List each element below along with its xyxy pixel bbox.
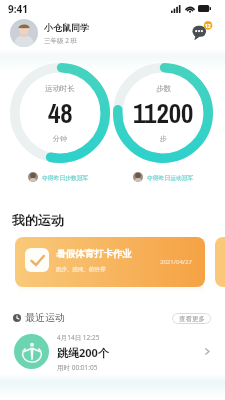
button[interactable]: 夺得昨日步数冠军 bbox=[28, 172, 89, 182]
button[interactable]: 最近运动 bbox=[13, 311, 65, 324]
staticText: 跳绳200个 bbox=[57, 345, 109, 360]
button[interactable]: Profile bbox=[10, 19, 38, 47]
staticText: 运动时长 bbox=[45, 84, 75, 93]
staticText: 11200 bbox=[133, 95, 194, 131]
staticText: 跑步、跳绳、俯卧撑 bbox=[56, 266, 106, 273]
staticText: 夺得昨日运动冠军 bbox=[147, 174, 194, 181]
staticText: 三年级 2 班 bbox=[44, 36, 78, 45]
button[interactable]: 夺得昨日运动冠军 bbox=[133, 172, 194, 182]
staticText: 我的运动 bbox=[12, 212, 64, 228]
staticText: 查看更多 bbox=[179, 315, 205, 323]
staticText: 暑假体育打卡作业 bbox=[56, 248, 132, 260]
staticText: 夺得昨日步数冠军 bbox=[42, 174, 89, 181]
staticText: 2021/04/27 bbox=[160, 258, 192, 266]
staticText: 步 bbox=[160, 134, 167, 143]
staticText: 小仓鼠同学 bbox=[44, 22, 89, 33]
staticText: 9:41 bbox=[8, 2, 28, 16]
staticText: 48 bbox=[48, 95, 73, 131]
staticText: 用时 00:01:05 bbox=[57, 363, 98, 372]
button[interactable]: 暑假体育打卡作业 bbox=[15, 237, 205, 287]
staticText: 4月14日 12:25 bbox=[57, 333, 100, 342]
staticText: 最近运动 bbox=[25, 311, 65, 324]
staticText: 分钟 bbox=[53, 134, 67, 143]
staticText: 12 bbox=[205, 23, 211, 30]
button[interactable]: Messages bbox=[192, 21, 214, 43]
button[interactable]: 4月14日 12:25 bbox=[0, 330, 225, 374]
button[interactable]: Next task bbox=[215, 237, 225, 287]
button[interactable]: 查看更多 bbox=[172, 313, 211, 324]
staticText: 步数 bbox=[156, 84, 171, 93]
